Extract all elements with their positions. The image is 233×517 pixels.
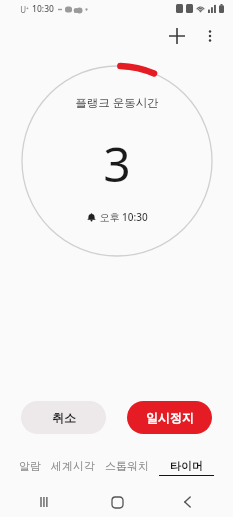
button[interactable]: Back <box>173 487 203 517</box>
button[interactable]: More options <box>195 21 225 51</box>
staticText: 스톱워치 <box>105 459 149 473</box>
staticText: 10:30 <box>32 3 54 15</box>
button[interactable]: 취소 <box>21 401 106 434</box>
button[interactable]: 일시정지 <box>127 401 212 434</box>
button[interactable]: 세계시각 <box>46 456 100 479</box>
staticText: 플랭크 운동시간 <box>75 95 159 111</box>
staticText: 타이머 <box>170 459 203 473</box>
button[interactable]: 알람 <box>14 456 46 479</box>
button[interactable]: Home <box>102 487 132 517</box>
staticText: U⁺ <box>20 4 29 15</box>
staticText: 취소 <box>52 410 76 425</box>
staticText: 3 <box>103 131 131 196</box>
staticText: 알람 <box>19 459 41 473</box>
button[interactable]: Add timer <box>160 19 194 53</box>
button[interactable]: 플랭크 운동시간 <box>19 63 215 259</box>
button[interactable]: 타이머 <box>154 456 219 479</box>
staticText: 일시정지 <box>146 410 194 425</box>
staticText: 세계시각 <box>51 459 95 473</box>
staticText: 오후 10:30 <box>99 210 148 224</box>
button[interactable]: Recent apps <box>30 487 60 517</box>
button[interactable]: 스톱워치 <box>100 456 154 479</box>
